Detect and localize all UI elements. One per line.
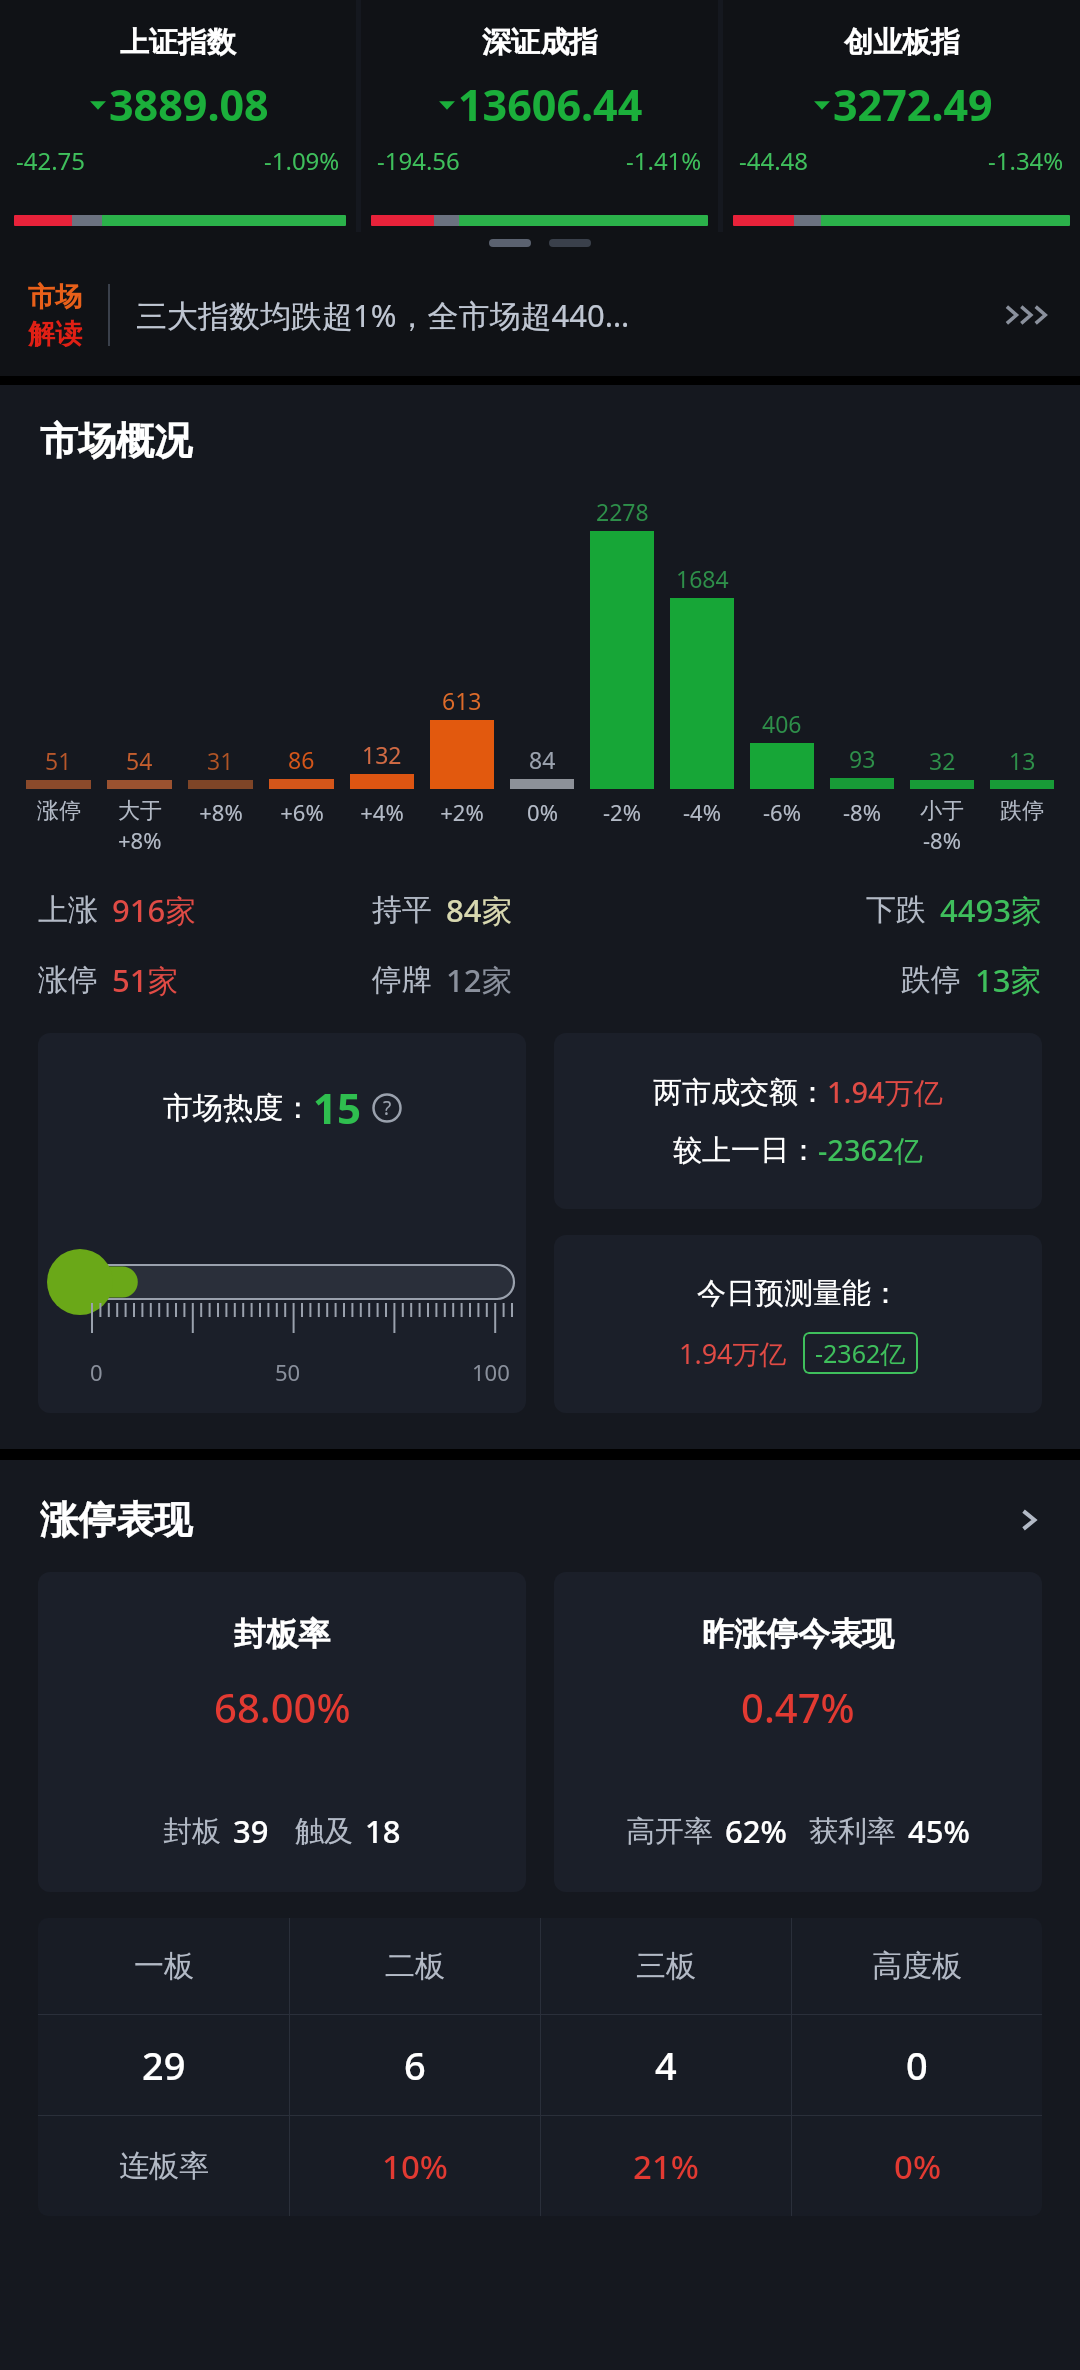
staticText: 1.94万亿 [827, 1072, 943, 1112]
staticText: 4493家 [940, 889, 1042, 931]
staticText: 市场热度： [163, 1089, 313, 1127]
staticText: 触及 [295, 1813, 353, 1850]
staticText: 三板 [636, 1947, 696, 1985]
staticText: -2% [603, 797, 641, 827]
staticText: 13 [1009, 745, 1036, 776]
staticText: +6% [280, 797, 324, 827]
staticText: 0 [906, 2039, 928, 2091]
staticText: 29 [142, 2039, 186, 2091]
staticText: -194.56 [377, 144, 460, 177]
staticText: +2% [440, 797, 484, 827]
staticText: 100 [472, 1357, 510, 1387]
staticText: 上证指数 [120, 24, 236, 61]
staticText: 二板 [385, 1947, 445, 1985]
staticText: 封板 [163, 1813, 221, 1850]
staticText: 68.00% [214, 1680, 351, 1734]
staticText: 62% [725, 1810, 787, 1852]
staticText: ? [383, 1095, 392, 1121]
staticText: 10% [382, 2144, 448, 2189]
staticText: 51家 [112, 959, 179, 1001]
staticText: 解读 [28, 317, 82, 351]
staticText: 今日预测量能： [697, 1275, 900, 1312]
other: More news [1004, 300, 1052, 330]
staticText: 21% [633, 2144, 699, 2189]
button[interactable]: 上证指数 [0, 0, 356, 232]
staticText: -44.48 [739, 144, 809, 177]
staticText: 3272.49 [833, 75, 993, 134]
staticText: 持平 [372, 891, 432, 929]
staticText: 0.47% [741, 1680, 855, 1734]
staticText: 下跌 [866, 891, 926, 929]
staticText: 1.94万亿 [679, 1335, 787, 1372]
button[interactable]: 今日预测量能： [554, 1235, 1042, 1413]
staticText: 涨停 [38, 961, 98, 999]
staticText: +4% [360, 797, 404, 827]
staticText: 93 [849, 743, 876, 774]
staticText: -1.41% [626, 144, 702, 177]
button[interactable]: 市场 [0, 254, 1080, 376]
staticText: 84家 [446, 889, 513, 931]
staticText: 406 [762, 708, 802, 739]
staticText: 获利率 [809, 1813, 896, 1850]
staticText: -8% [923, 825, 961, 855]
staticText: -8% [843, 797, 881, 827]
button[interactable]: 两市成交额： [554, 1033, 1042, 1209]
staticText: 45% [908, 1810, 970, 1852]
staticText: 涨停表现 [40, 1496, 192, 1544]
staticText: 高度板 [872, 1947, 962, 1985]
staticText: 1684 [676, 563, 729, 594]
button[interactable]: 创业板指 [723, 0, 1080, 232]
staticText: 86 [288, 744, 315, 775]
staticText: -1.09% [264, 144, 340, 177]
button[interactable]: 三板 [541, 1918, 791, 2014]
staticText: 132 [362, 739, 402, 770]
staticText: 6 [404, 2039, 426, 2091]
staticText: 高开率 [626, 1813, 713, 1850]
staticText: +8% [199, 797, 243, 827]
button[interactable]: 深证成指 [361, 0, 718, 232]
staticText: 跌停 [1000, 797, 1044, 825]
button[interactable]: 二板 [290, 1918, 540, 2014]
staticText: -6% [763, 797, 801, 827]
staticText: 停牌 [372, 961, 432, 999]
staticText: 创业板指 [844, 24, 960, 61]
staticText: 50 [275, 1357, 301, 1387]
staticText: 15 [313, 1079, 362, 1136]
staticText: -4% [683, 797, 721, 827]
staticText: -2362亿 [818, 1130, 923, 1170]
staticText: 小于 [920, 797, 964, 825]
staticText: 市场概况 [40, 417, 192, 465]
staticText: 深证成指 [482, 24, 598, 61]
staticText: 18 [365, 1810, 401, 1852]
staticText: 13606.44 [458, 75, 643, 134]
staticText: 市场 [28, 280, 82, 314]
button[interactable]: 高度板 [792, 1918, 1042, 2014]
staticText: 三大指数均跌超1%，全市场超440… [136, 294, 630, 336]
button[interactable]: 市场热度： [38, 1033, 526, 1413]
button[interactable]: 一板 [38, 1918, 289, 2014]
staticText: 12家 [446, 959, 513, 1001]
staticText: 39 [233, 1810, 269, 1852]
staticText: 32 [929, 745, 956, 776]
staticText: -2362亿 [815, 1336, 906, 1370]
staticText: 51 [45, 745, 72, 776]
staticText: 3889.08 [109, 75, 269, 134]
button[interactable]: 涨停表现 [0, 1496, 1080, 1544]
staticText: 较上一日： [673, 1132, 818, 1169]
staticText: 连板率 [119, 2147, 209, 2185]
staticText: 84 [529, 744, 556, 775]
staticText: 31 [207, 745, 234, 776]
staticText: 涨停 [37, 797, 81, 825]
staticText: 916家 [112, 889, 197, 931]
button[interactable]: 封板率 [38, 1572, 526, 1892]
staticText: 0 [90, 1357, 103, 1387]
staticText: 613 [442, 685, 482, 716]
staticText: -1.34% [988, 144, 1064, 177]
staticText: 一板 [134, 1947, 194, 1985]
button[interactable]: 昨涨停今表现 [554, 1572, 1042, 1892]
other: Help [372, 1093, 402, 1123]
staticText: 4 [655, 2039, 677, 2091]
staticText: 0% [527, 797, 558, 827]
staticText: 54 [126, 745, 153, 776]
staticText: +8% [118, 825, 162, 855]
